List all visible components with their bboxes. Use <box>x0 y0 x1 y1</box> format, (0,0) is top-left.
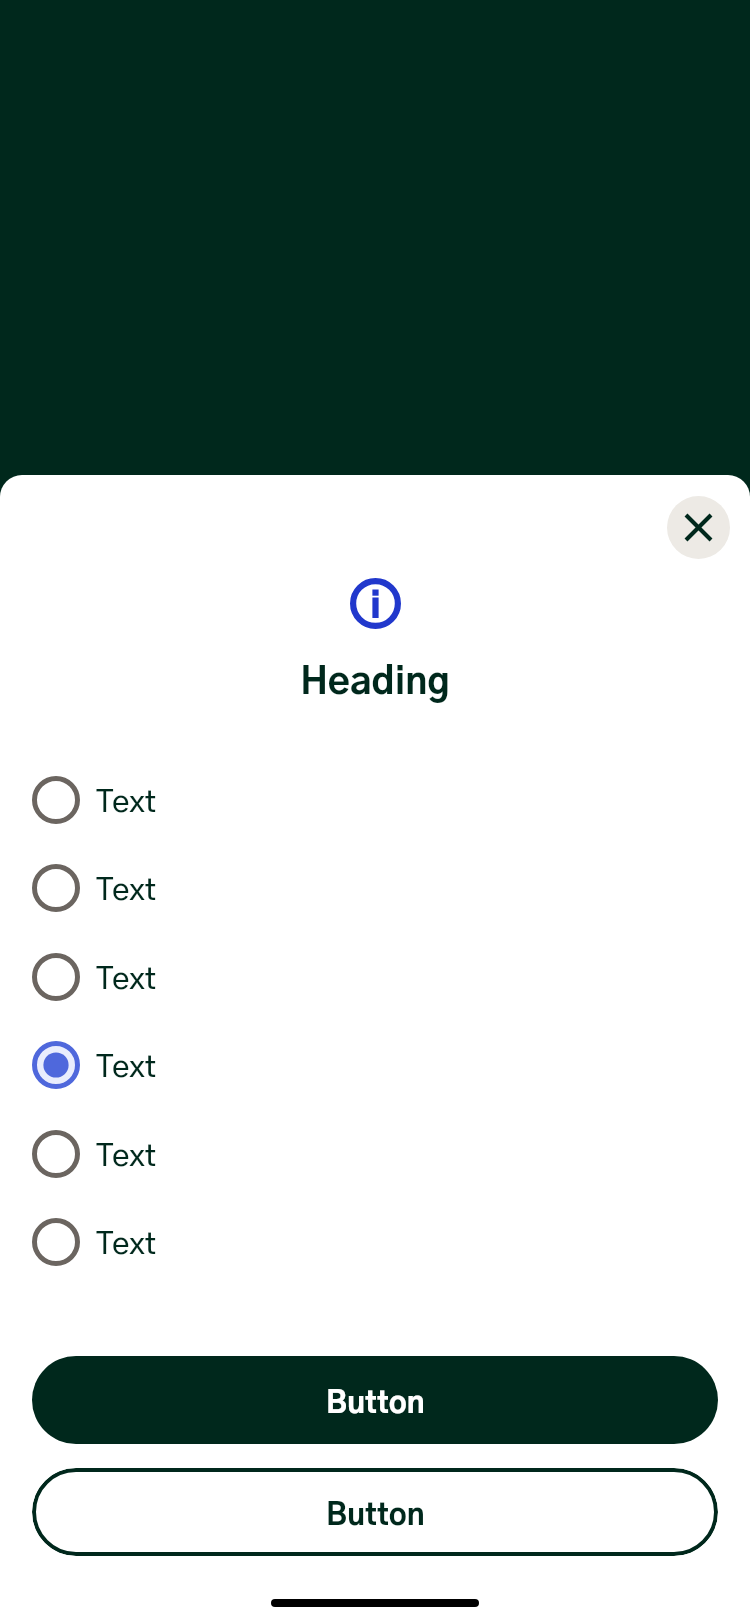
button[interactable]: Text <box>0 1110 750 1198</box>
button[interactable]: Text <box>0 933 750 1021</box>
staticText: Button <box>326 1501 425 1531</box>
staticText: Text <box>96 787 157 818</box>
staticText: Heading <box>300 664 450 701</box>
button[interactable]: Text <box>0 1198 750 1286</box>
staticText: Button <box>326 1389 425 1419</box>
staticText: Text <box>96 1229 157 1260</box>
button[interactable]: Button <box>32 1468 718 1556</box>
button[interactable]: Button <box>32 1356 718 1444</box>
button[interactable]: Close <box>667 496 730 559</box>
button[interactable]: Text <box>0 1021 750 1109</box>
button[interactable]: Text <box>0 844 750 932</box>
staticText: Text <box>96 964 157 995</box>
staticText: Text <box>96 1052 157 1083</box>
staticText: Text <box>96 1141 157 1172</box>
staticText: Text <box>96 875 157 906</box>
button[interactable]: Text <box>0 756 750 844</box>
